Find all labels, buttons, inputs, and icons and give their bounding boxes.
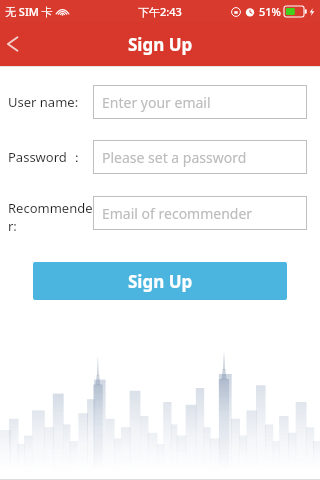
button[interactable]: Please set a password	[93, 140, 307, 174]
button[interactable]: Enter your email	[93, 85, 307, 119]
staticText: Password ：	[8, 148, 84, 166]
staticText: 无 SIM 卡	[5, 4, 53, 19]
button[interactable]: Email of recommender	[93, 196, 307, 230]
staticText: Sign Up	[128, 270, 193, 293]
staticText: 51%	[259, 4, 281, 19]
button[interactable]: Back	[0, 22, 44, 66]
staticText: Email of recommender	[102, 204, 253, 223]
button[interactable]: Sign Up	[33, 262, 287, 300]
staticText: User name:	[8, 93, 79, 111]
staticText: Please set a password	[102, 148, 247, 167]
staticText: Recommender:	[8, 199, 93, 233]
staticText: Sign Up	[128, 33, 193, 56]
staticText: 下午2:43	[138, 4, 182, 19]
staticText: Enter your email	[102, 93, 211, 112]
